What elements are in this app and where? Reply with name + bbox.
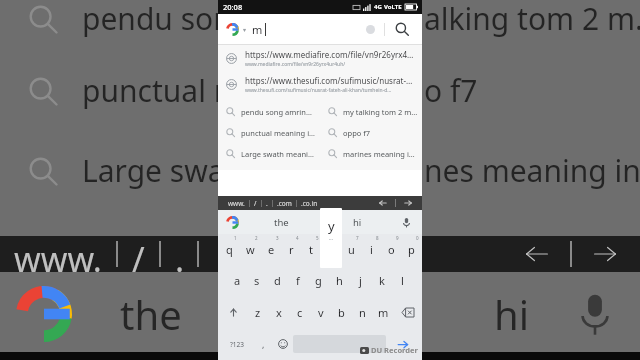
staticText: n	[359, 305, 366, 320]
button[interactable]: t	[301, 234, 321, 265]
staticText: .	[266, 199, 268, 208]
button[interactable]: a	[227, 265, 247, 296]
button[interactable]: .co.in	[301, 199, 318, 208]
staticText: /	[132, 236, 145, 272]
button[interactable]: v	[310, 296, 331, 328]
button[interactable]: www.	[228, 199, 245, 208]
staticText: 4	[296, 235, 299, 241]
staticText: oppo f7	[343, 128, 371, 138]
button[interactable]: my talking tom 2 m...	[320, 101, 422, 122]
button[interactable]: p	[401, 234, 421, 265]
staticText: s	[254, 273, 260, 288]
staticText: ?123	[230, 340, 244, 349]
button[interactable]: Voice input	[397, 213, 415, 231]
button[interactable]: Space	[293, 335, 386, 353]
button[interactable]: /	[254, 199, 257, 208]
button[interactable]: d	[267, 265, 287, 296]
button[interactable]: Clear	[359, 18, 381, 40]
staticText: 3	[276, 235, 279, 241]
button[interactable]: w	[240, 234, 261, 265]
staticText: w	[246, 242, 255, 257]
button[interactable]: n	[352, 296, 373, 328]
staticText: u	[348, 242, 355, 257]
button[interactable]: k	[371, 265, 392, 296]
button[interactable]: c	[289, 296, 310, 328]
staticText: e	[268, 242, 275, 257]
button[interactable]: z	[247, 296, 268, 328]
staticText: my talking tom 2 m...	[343, 107, 418, 117]
button[interactable]: https://www.mediafire.com/file/vn9r26yrx…	[218, 45, 422, 71]
staticText: /	[254, 199, 257, 208]
staticText: marines meaning in...	[343, 149, 418, 159]
staticText: ...	[329, 235, 334, 242]
staticText: 0	[416, 235, 419, 241]
button[interactable]: o	[381, 234, 401, 265]
button[interactable]: Search	[390, 17, 414, 41]
button[interactable]: b	[331, 296, 352, 328]
button[interactable]: the	[274, 216, 289, 229]
staticText: k	[379, 273, 385, 288]
button[interactable]: h	[329, 265, 350, 296]
button[interactable]: oppo f7	[320, 122, 422, 143]
staticText: https://www.thesufi.com/sufimusic/nusrat…	[245, 75, 414, 86]
button[interactable]: https://www.thesufi.com/sufimusic/nusrat…	[218, 71, 422, 97]
button[interactable]: .com	[277, 199, 292, 208]
staticText: nes meaning in...	[424, 150, 640, 191]
button[interactable]: .	[266, 199, 268, 208]
button[interactable]: Backspace	[394, 296, 421, 328]
button[interactable]: f	[287, 265, 308, 296]
staticText: q	[226, 242, 233, 257]
staticText: ▾	[243, 26, 247, 33]
staticText: i	[370, 242, 373, 257]
button[interactable]: l	[392, 265, 413, 296]
button[interactable]: j	[350, 265, 371, 296]
staticText: 1	[234, 235, 237, 241]
staticText: h	[336, 273, 343, 288]
button[interactable]: s	[247, 265, 267, 296]
button[interactable]: Large swath meanin...	[218, 143, 320, 164]
button[interactable]: Shift	[219, 296, 247, 328]
staticText: a	[234, 273, 241, 288]
staticText: j	[359, 273, 362, 288]
button[interactable]: y	[320, 208, 342, 268]
button[interactable]: r	[281, 234, 301, 265]
button[interactable]: i	[361, 234, 381, 265]
button[interactable]: Next	[400, 196, 416, 210]
button[interactable]: Enter	[386, 328, 419, 360]
button[interactable]: g	[308, 265, 329, 296]
button[interactable]: y	[321, 234, 341, 265]
button[interactable]: q	[219, 234, 240, 265]
staticText: y	[328, 217, 335, 235]
staticText: c	[297, 305, 303, 320]
staticText: .com	[277, 199, 292, 208]
button[interactable]: marines meaning in...	[320, 143, 422, 164]
staticText: t	[309, 242, 313, 257]
staticText: DU Recorder	[371, 345, 418, 355]
button[interactable]: e	[261, 234, 281, 265]
staticText: b	[338, 305, 345, 320]
staticText: .	[175, 236, 185, 272]
staticText: www.	[228, 199, 245, 208]
button[interactable]: x	[268, 296, 289, 328]
button[interactable]: pendu song amrinde...	[218, 101, 320, 122]
staticText: g	[315, 273, 322, 288]
staticText: hi	[494, 287, 530, 341]
button[interactable]: u	[341, 234, 361, 265]
staticText: r	[289, 242, 294, 257]
staticText: pendu song a	[82, 0, 275, 39]
staticText: punctual meaning in...	[241, 128, 316, 138]
button[interactable]: Previous	[375, 196, 391, 210]
staticText: z	[255, 305, 261, 320]
staticText: alking tom 2 m...	[424, 0, 640, 39]
button[interactable]: ?123	[221, 328, 253, 360]
staticText: www.thesufi.com/sufimusic/nusrat-fateh-a…	[245, 87, 392, 94]
button[interactable]: hi	[353, 216, 362, 229]
button[interactable]: punctual meaning in...	[218, 122, 320, 143]
staticText: Large swath r	[82, 150, 275, 191]
staticText: Large swath meanin...	[241, 149, 316, 159]
staticText: m	[252, 22, 263, 37]
button[interactable]: m	[373, 296, 394, 328]
button[interactable]: Emoji	[273, 328, 293, 360]
button[interactable]: ,	[253, 328, 273, 360]
